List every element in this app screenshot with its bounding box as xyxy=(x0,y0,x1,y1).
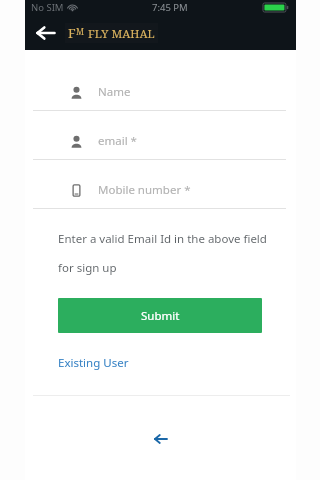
button[interactable]: Name xyxy=(25,80,296,104)
staticText: Name xyxy=(98,84,131,100)
staticText: 7:45 PM xyxy=(152,1,188,14)
staticText: FLY MAHAL xyxy=(88,26,155,42)
staticText: F xyxy=(68,24,76,42)
staticText: for sign up xyxy=(58,260,117,276)
button[interactable]: email * xyxy=(25,129,296,153)
staticText: Mobile number * xyxy=(98,182,191,198)
staticText: M xyxy=(76,26,84,38)
staticText: Existing User xyxy=(58,355,129,371)
staticText: Enter a valid Email Id in the above fiel… xyxy=(58,231,267,247)
staticText: No SIM xyxy=(31,1,64,14)
staticText: email * xyxy=(98,133,137,149)
button[interactable]: Submit xyxy=(58,298,262,333)
button[interactable]: Existing User xyxy=(58,355,129,371)
button[interactable]: Back xyxy=(31,18,61,48)
button[interactable]: Mobile number * xyxy=(25,178,296,202)
staticText: Submit xyxy=(141,308,180,324)
button[interactable]: Back xyxy=(150,428,172,450)
button[interactable]: F xyxy=(68,24,155,42)
